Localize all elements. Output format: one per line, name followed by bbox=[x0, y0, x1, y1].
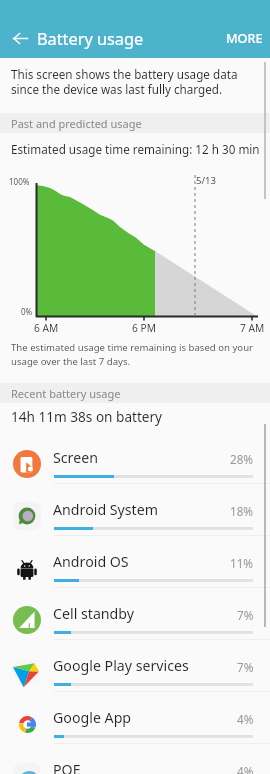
staticText: Estimated usage time remaining: 12 h 30 … bbox=[11, 141, 260, 157]
staticText: Screen bbox=[53, 448, 98, 467]
staticText: 11% bbox=[230, 555, 254, 571]
button[interactable]: Google Play services bbox=[0, 642, 270, 694]
staticText: 6 PM bbox=[132, 321, 156, 335]
button[interactable]: Cell standby bbox=[0, 590, 270, 642]
staticText: 4% bbox=[237, 763, 254, 774]
staticText: Cell standby bbox=[53, 604, 135, 623]
button[interactable]: Screen bbox=[0, 434, 270, 486]
button[interactable]: Google App bbox=[0, 694, 270, 746]
button[interactable]: Android OS bbox=[0, 538, 270, 590]
button[interactable]: MORE bbox=[215, 18, 270, 58]
staticText: Battery usage bbox=[37, 28, 144, 50]
staticText: 7 AM bbox=[240, 321, 265, 335]
staticText: POE bbox=[53, 760, 81, 774]
staticText: Google Play services bbox=[53, 656, 189, 675]
staticText: 18% bbox=[230, 503, 254, 519]
staticText: 14h 11m 38s on battery bbox=[11, 407, 163, 426]
staticText: This screen shows the battery usage data… bbox=[11, 66, 251, 98]
button[interactable]: Navigate up bbox=[0, 18, 40, 58]
staticText: 0% bbox=[21, 306, 33, 317]
staticText: 7% bbox=[237, 607, 254, 623]
staticText: MORE bbox=[226, 30, 263, 47]
staticText: Android OS bbox=[53, 552, 129, 571]
staticText: 28% bbox=[230, 451, 254, 467]
button[interactable]: Android System bbox=[0, 486, 270, 538]
staticText: Google App bbox=[53, 708, 132, 727]
staticText: Android System bbox=[53, 500, 159, 519]
staticText: 4% bbox=[237, 711, 254, 727]
staticText: 100% bbox=[9, 176, 30, 187]
staticText: The estimated usage time remaining is ba… bbox=[11, 341, 259, 367]
button[interactable]: POE bbox=[0, 746, 270, 774]
staticText: 7% bbox=[237, 659, 254, 675]
staticText: 6 AM bbox=[34, 321, 59, 335]
staticText: 5/13 bbox=[196, 174, 216, 187]
staticText: Past and predicted usage bbox=[11, 116, 142, 131]
staticText: Recent battery usage bbox=[11, 386, 121, 401]
